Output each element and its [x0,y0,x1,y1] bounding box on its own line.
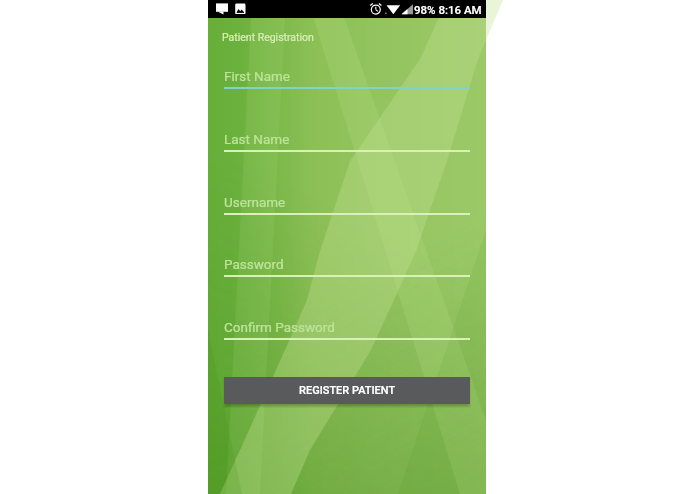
staticText: First Name [224,68,291,84]
button[interactable]: Confirm Password [224,314,470,340]
staticText: Last Name [224,131,290,147]
button[interactable]: First Name [224,63,470,89]
button[interactable]: REGISTER PATIENT [224,377,470,404]
staticText: Confirm Password [224,319,335,335]
staticText: Password [224,256,284,272]
button[interactable]: Password [224,251,470,277]
button[interactable]: Last Name [224,126,470,152]
staticText: 98% 8:16 AM [414,3,482,16]
staticText: Patient Registration [222,31,314,43]
staticText: REGISTER PATIENT [299,384,396,397]
button[interactable]: Username [224,189,470,215]
staticText: Username [224,194,286,210]
